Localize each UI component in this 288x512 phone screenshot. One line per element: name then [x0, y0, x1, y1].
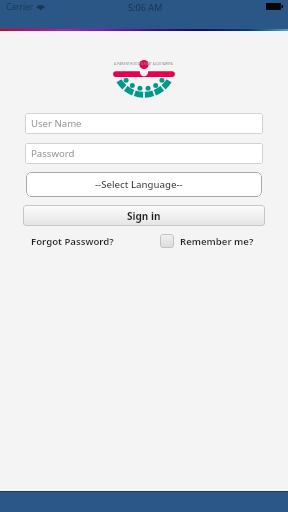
button[interactable]: Password [25, 143, 263, 164]
button[interactable]: Sign in [23, 205, 265, 226]
button[interactable]: --Select Language-- [26, 172, 262, 197]
staticText: A.PARENTHOOD [114, 62, 141, 66]
staticText: User Name [31, 117, 82, 130]
button[interactable]: User Name [25, 113, 263, 134]
staticText: NAWAT ALQUTAWIYA [141, 62, 173, 66]
staticText: 5:06 AM [128, 1, 163, 13]
staticText: Forgot Password? [31, 235, 114, 248]
staticText: Remember me? [180, 235, 254, 248]
staticText: Sign in [127, 209, 161, 223]
button[interactable]: Forgot Password? [31, 235, 114, 248]
button[interactable]: Remember me? [160, 234, 254, 248]
staticText: Carrier [6, 1, 34, 12]
staticText: --Select Language-- [95, 178, 183, 191]
staticText: Password [31, 147, 75, 160]
